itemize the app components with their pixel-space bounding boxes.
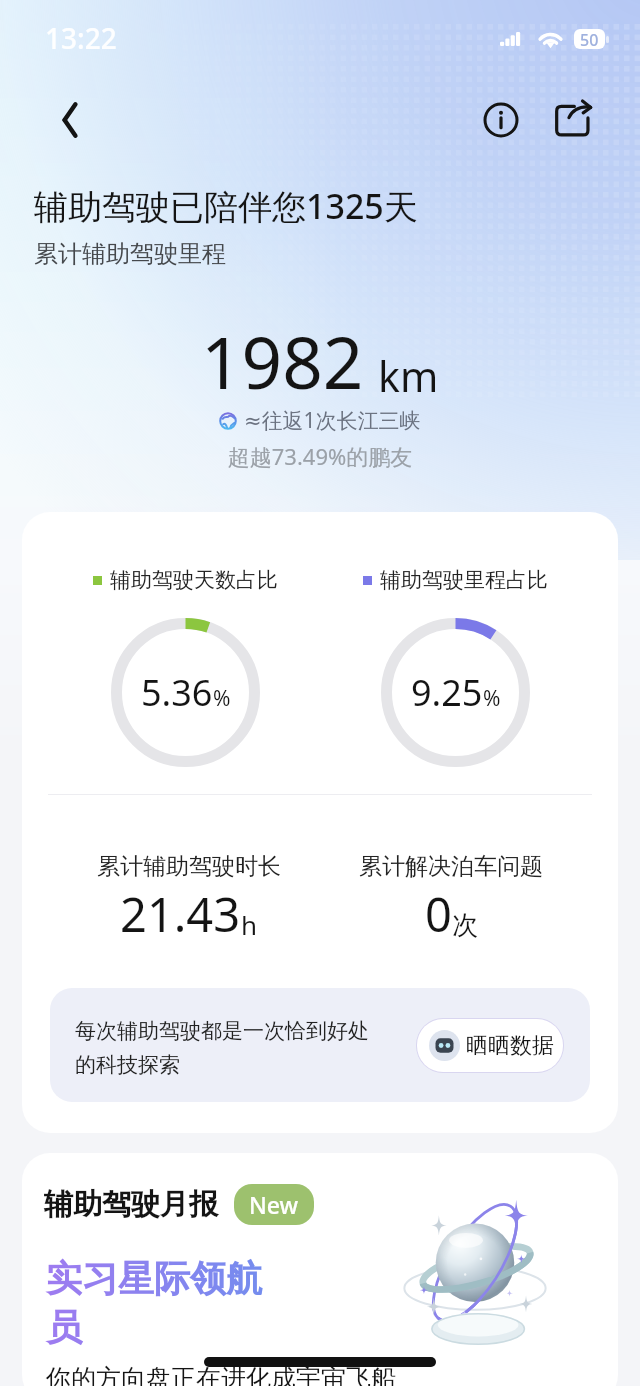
staticText: 辅助驾驶已陪伴您1325天	[34, 183, 418, 229]
staticText: 辅助驾驶天数占比	[110, 567, 278, 593]
staticText: 实习星际领航 员	[46, 1256, 262, 1351]
button[interactable]: Share	[547, 94, 599, 146]
staticText: 13:22	[45, 19, 117, 57]
staticText: 累计辅助驾驶时长	[97, 852, 281, 881]
staticText: 1982	[201, 313, 364, 410]
staticText: 累计辅助驾驶里程	[34, 239, 226, 269]
staticText: 晒晒数据	[466, 1032, 554, 1060]
staticText: 9.25	[411, 668, 483, 717]
staticText: 50	[580, 29, 599, 49]
staticText: %	[483, 684, 501, 713]
staticText: 辅助驾驶月报	[44, 1186, 218, 1223]
staticText: 次	[452, 909, 478, 942]
button[interactable]: Back	[44, 94, 96, 146]
staticText: ≈往返1次长江三峡	[244, 406, 421, 435]
staticText: 你的方向盘正在进化成宇宙飞船	[46, 1363, 396, 1386]
staticText: km	[378, 348, 439, 404]
staticText: h	[241, 907, 258, 942]
staticText: 0	[425, 882, 452, 946]
staticText: 5.36	[141, 668, 213, 717]
staticText: 21.43	[120, 882, 241, 946]
staticText: 累计解决泊车问题	[359, 852, 543, 881]
staticText: 超越73.49%的鹏友	[0, 441, 640, 471]
staticText: 辅助驾驶里程占比	[380, 567, 548, 593]
staticText: New	[249, 1189, 299, 1220]
button[interactable]: 晒晒数据	[417, 1019, 563, 1072]
staticText: 每次辅助驾驶都是一次恰到好处 的科技探索	[75, 1018, 369, 1078]
staticText: %	[213, 684, 231, 713]
button[interactable]: Info	[475, 94, 527, 146]
